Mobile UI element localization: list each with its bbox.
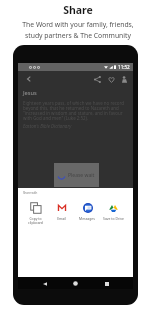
button[interactable]: Messages [74,201,100,221]
staticText: Share [63,3,93,17]
button[interactable]: Copy to clipboard [22,201,48,225]
button[interactable]: Account [119,74,129,84]
staticText: 11:52 [118,64,130,70]
button[interactable]: Back [24,74,34,84]
button[interactable]: Save to Drive [100,201,126,221]
staticText: Email [57,216,66,221]
staticText: Jesus [23,89,37,97]
staticText: Copy to clipboard [28,216,43,225]
staticText: The Word with your family, friends, [22,20,134,29]
staticText: Share with [23,191,38,195]
button[interactable]: Home [71,279,80,288]
staticText: Eighteen years pass, of which we have no… [23,100,128,121]
button[interactable]: Share [92,74,102,84]
button[interactable]: Back [40,279,49,288]
button[interactable]: Email [48,201,74,221]
button[interactable]: Recents [102,279,111,288]
staticText: Please wait [68,172,95,179]
staticText: Easton's Bible Dictionary [23,123,72,129]
staticText: study partners & The Community [25,31,131,40]
button[interactable]: Favorite [106,74,116,84]
staticText: Messages [79,216,95,221]
staticText: Save to Drive [103,216,124,221]
